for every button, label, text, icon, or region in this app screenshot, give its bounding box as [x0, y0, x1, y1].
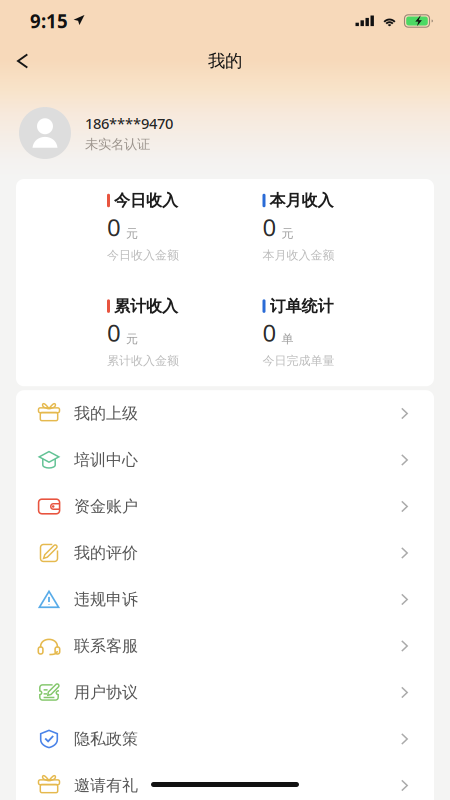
staticText: 我的评价 [74, 543, 138, 563]
button[interactable]: 违规申诉 [16, 576, 434, 623]
staticText: 联系客服 [74, 636, 138, 656]
staticText: 0 [262, 317, 276, 348]
staticText: 隐私政策 [74, 729, 138, 749]
button[interactable]: 联系客服 [16, 623, 434, 669]
staticText: 0 [107, 211, 121, 243]
button[interactable]: 我的上级 [16, 390, 434, 437]
button[interactable]: 资金账户 [16, 483, 434, 530]
button[interactable]: 186****9470 [0, 100, 450, 166]
staticText: 累计收入金额 [107, 353, 179, 368]
staticText: 今日收入 [114, 191, 178, 210]
staticText: 今日收入金额 [107, 248, 179, 263]
staticText: 元 [126, 332, 138, 346]
button[interactable]: Back [0, 42, 42, 79]
staticText: 资金账户 [74, 497, 138, 516]
staticText: 今日完成单量 [262, 353, 334, 368]
staticText: 186****9470 [85, 114, 173, 133]
staticText: 本月收入金额 [262, 248, 334, 263]
staticText: 我的上级 [74, 404, 138, 423]
staticText: 元 [281, 226, 293, 241]
staticText: 累计收入 [114, 296, 178, 316]
staticText: 0 [107, 317, 121, 348]
button[interactable]: 用户协议 [16, 669, 434, 716]
button[interactable]: 我的评价 [16, 530, 434, 576]
staticText: 培训中心 [74, 450, 138, 470]
staticText: 单 [281, 332, 293, 346]
staticText: 违规申诉 [74, 590, 138, 609]
button[interactable]: 邀请有礼 [16, 762, 434, 800]
staticText: 未实名认证 [85, 136, 150, 152]
staticText: 9:15 [30, 9, 68, 33]
button[interactable]: 隐私政策 [16, 716, 434, 762]
staticText: 邀请有礼 [74, 776, 138, 795]
staticText: 元 [126, 226, 138, 241]
staticText: 本月收入 [269, 191, 333, 210]
staticText: 我的 [208, 50, 242, 72]
staticText: 用户协议 [74, 683, 138, 702]
staticText: 0 [262, 211, 276, 243]
button[interactable]: 培训中心 [16, 437, 434, 483]
staticText: 订单统计 [269, 296, 333, 316]
